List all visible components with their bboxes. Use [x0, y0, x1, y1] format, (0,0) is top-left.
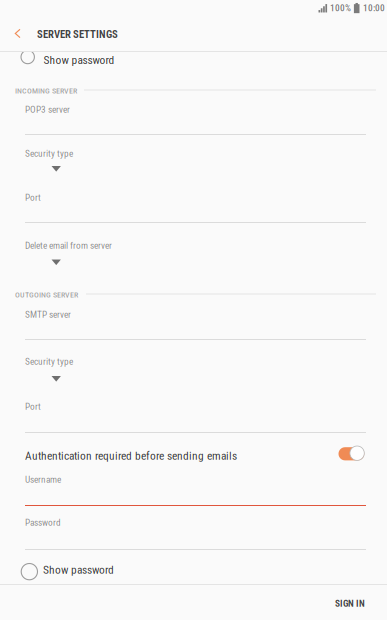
- staticText: Show password: [43, 53, 114, 67]
- staticText: 10:00: [363, 3, 385, 13]
- button[interactable]: Show password: [0, 51, 387, 75]
- staticText: POP3 server: [25, 104, 70, 115]
- staticText: 100%: [330, 3, 351, 13]
- button[interactable]: Back: [0, 18, 37, 51]
- button[interactable]: SIGN IN: [315, 584, 387, 620]
- staticText: Port: [25, 401, 41, 412]
- staticText: Authentication required before sending e…: [25, 449, 237, 462]
- staticText: INCOMING SERVER: [15, 86, 77, 95]
- staticText: Password: [25, 517, 61, 528]
- staticText: SERVER SETTINGS: [37, 28, 118, 40]
- button[interactable]: Authentication required before sending e…: [0, 441, 387, 469]
- staticText: Port: [25, 192, 41, 203]
- staticText: OUTGOING SERVER: [15, 290, 78, 299]
- staticText: Username: [25, 474, 61, 485]
- staticText: Security type: [25, 148, 73, 159]
- staticText: Security type: [25, 356, 73, 367]
- button[interactable]: Show password: [0, 554, 387, 586]
- staticText: SIGN IN: [335, 598, 365, 609]
- staticText: Delete email from server: [25, 240, 112, 251]
- staticText: Show password: [43, 563, 114, 576]
- staticText: SMTP server: [25, 309, 71, 320]
